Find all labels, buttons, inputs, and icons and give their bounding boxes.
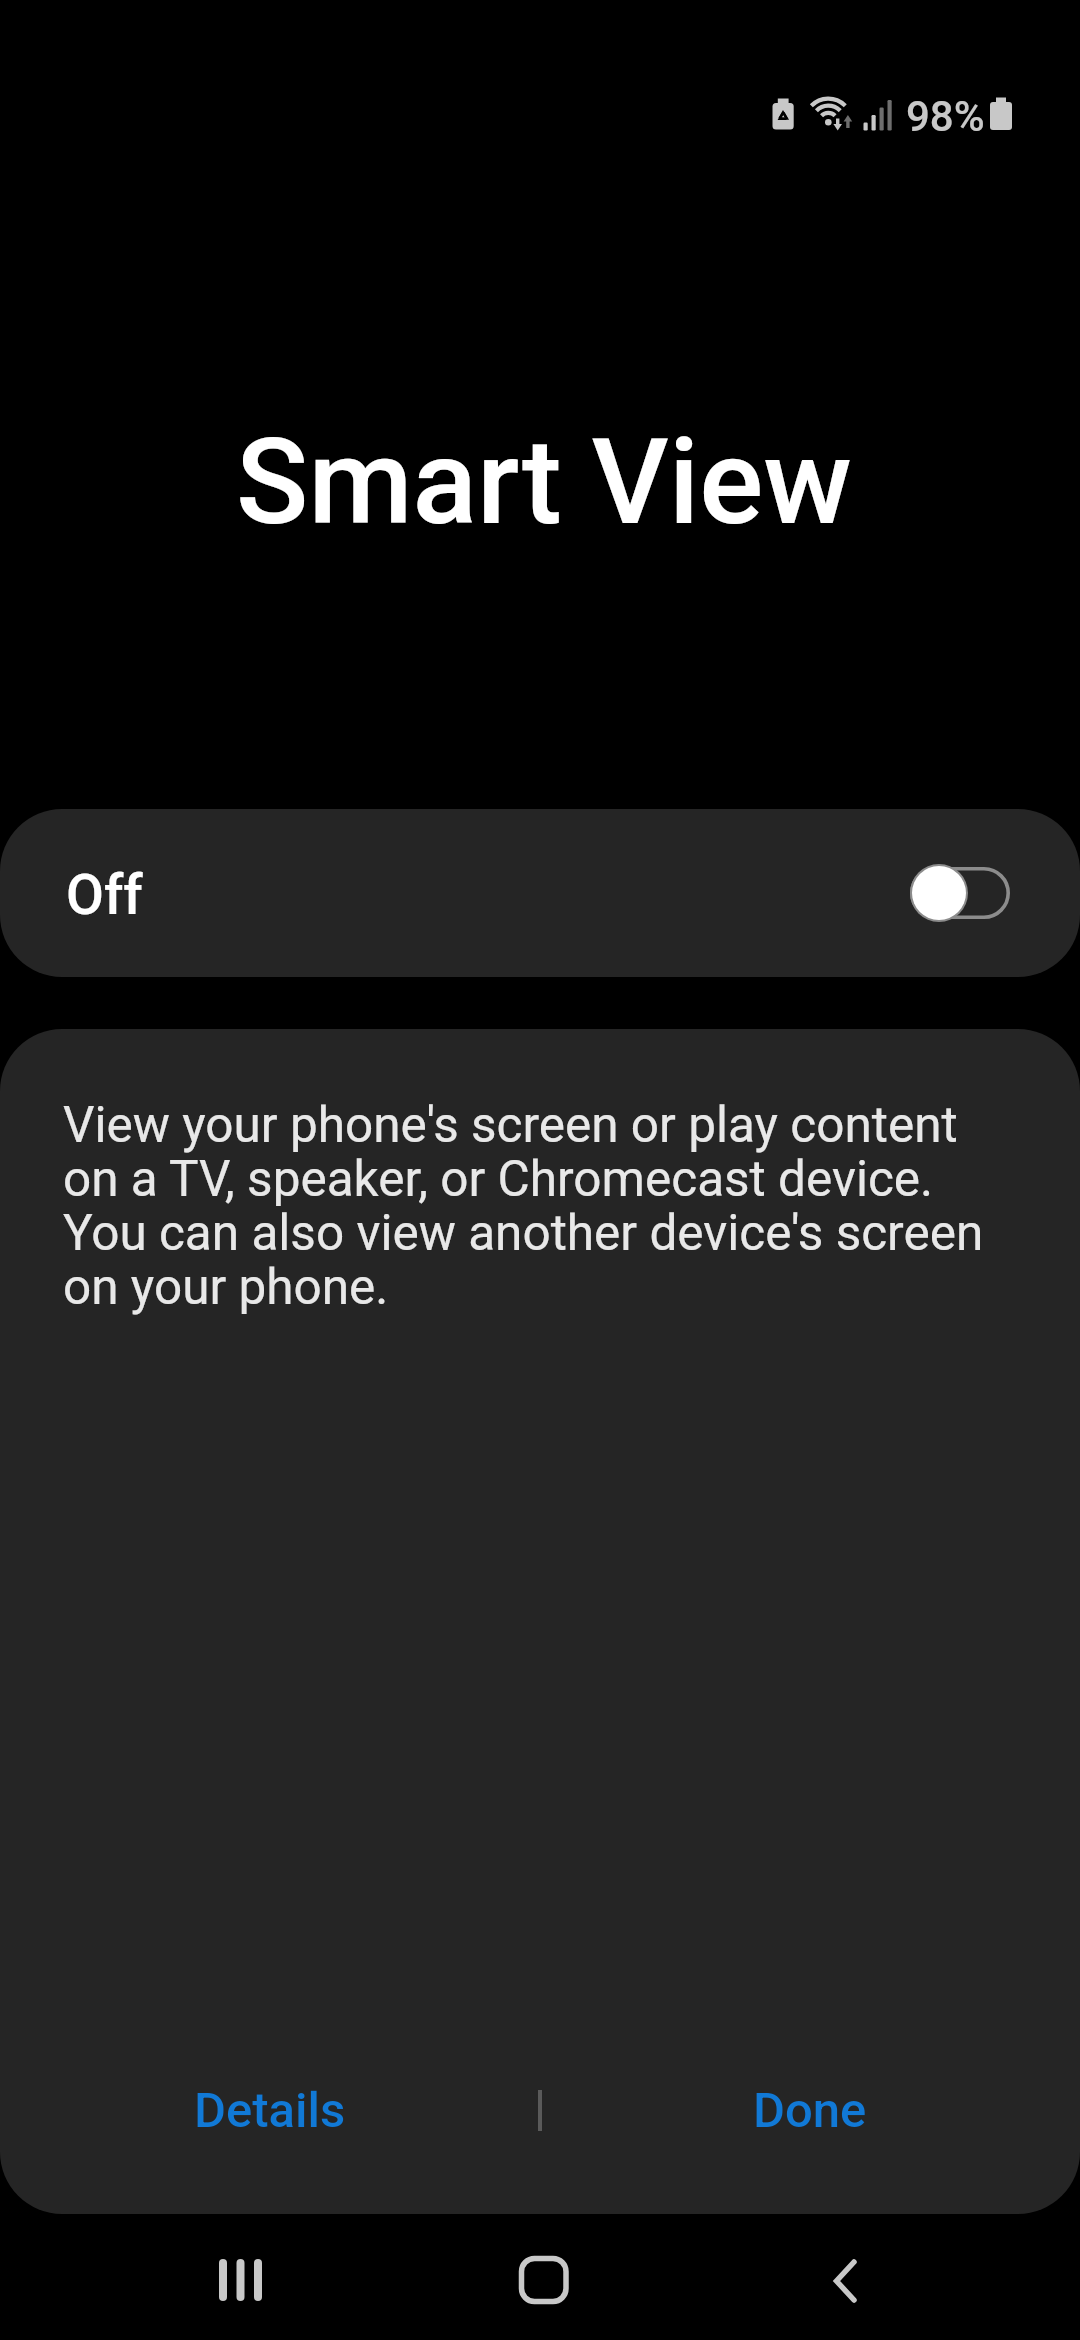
staticText: Details — [194, 2082, 346, 2139]
button[interactable]: Off — [0, 809, 1080, 977]
staticText: 98% — [906, 92, 985, 141]
button[interactable]: Done — [540, 2045, 1080, 2175]
button[interactable]: Recent apps — [173, 2220, 293, 2340]
button[interactable]: Smart View on/off — [910, 864, 1010, 922]
button[interactable]: Home — [482, 2219, 602, 2339]
staticText: Smart View — [236, 412, 852, 552]
staticText: Done — [753, 2082, 867, 2139]
staticText: Off — [66, 863, 143, 927]
button[interactable]: Back — [785, 2221, 905, 2340]
button[interactable]: Details — [0, 2045, 540, 2175]
staticText: View your phone's screen or play content… — [63, 1096, 984, 1316]
